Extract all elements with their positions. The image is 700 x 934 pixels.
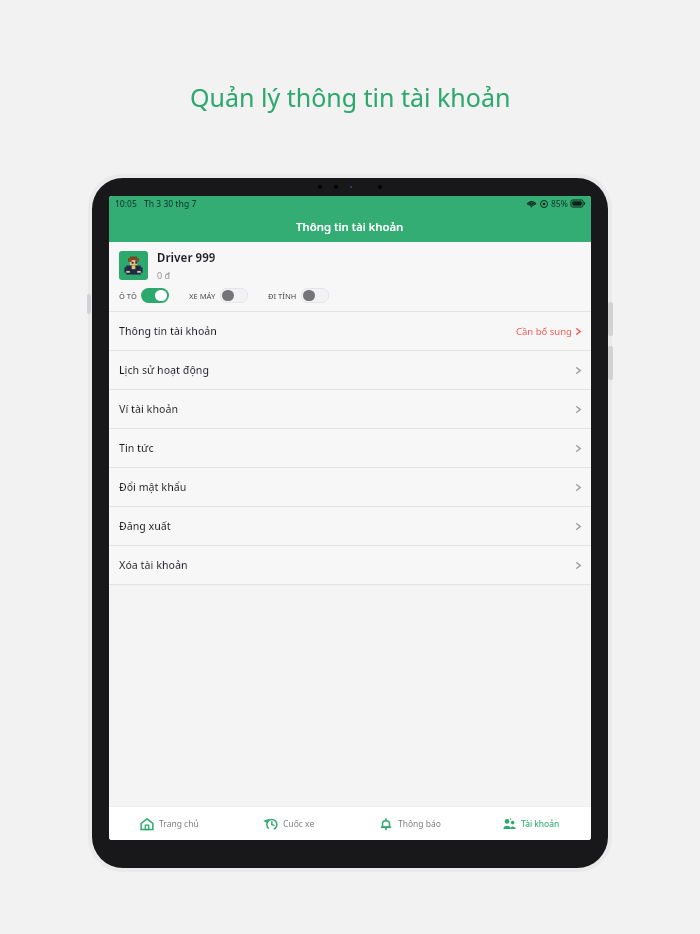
other: Trang chủ (140, 817, 154, 831)
staticText: Thông tin tài khoản (119, 324, 217, 338)
button[interactable]: Xóa tài khoản (109, 546, 591, 585)
button[interactable]: Tin tức (109, 429, 591, 468)
other: Tài khoản (502, 817, 516, 831)
staticText: Th 3 30 thg 7 (144, 198, 197, 210)
staticText: Thông báo (398, 818, 441, 830)
staticText: ĐI TỈNH (268, 291, 297, 301)
staticText: 10:05 (115, 198, 137, 210)
button[interactable]: Ô TÔ (119, 288, 169, 303)
button[interactable]: Thông tin tài khoản (109, 312, 591, 351)
staticText: Trang chủ (159, 818, 199, 830)
staticText: Cuốc xe (283, 818, 315, 830)
staticText: Tài khoản (521, 818, 560, 830)
staticText: 0 đ (157, 269, 171, 281)
staticText: Đăng xuất (119, 519, 171, 533)
staticText: Cần bổ sung (516, 325, 572, 338)
staticText: Thông tin tài khoản (296, 219, 404, 235)
button[interactable]: XE MÁY (189, 288, 248, 303)
button[interactable]: Đổi mật khẩu (109, 468, 591, 507)
staticText: Ô TÔ (119, 291, 137, 301)
staticText: Ví tài khoản (119, 402, 179, 416)
button[interactable]: ĐI TỈNH (268, 288, 329, 303)
button[interactable]: Cuốc xe (229, 807, 349, 840)
staticText: XE MÁY (189, 291, 216, 301)
staticText: Đổi mật khẩu (119, 480, 187, 494)
staticText: Tin tức (119, 441, 154, 455)
other: Thông báo (379, 817, 393, 831)
staticText: Quản lý thông tin tài khoản (190, 80, 511, 114)
button[interactable]: Thông báo (349, 807, 470, 840)
staticText: 85% (551, 198, 568, 210)
button[interactable]: Ví tài khoản (109, 390, 591, 429)
button[interactable]: Trang chủ (109, 807, 229, 840)
button[interactable]: Đăng xuất (109, 507, 591, 546)
button[interactable]: Lịch sử hoạt động (109, 351, 591, 390)
staticText: Xóa tài khoản (119, 558, 188, 572)
button[interactable]: Tài khoản (470, 807, 591, 840)
staticText: Lịch sử hoạt động (119, 363, 209, 377)
staticText: Driver 999 (157, 250, 216, 266)
other: Cuốc xe (264, 817, 278, 831)
